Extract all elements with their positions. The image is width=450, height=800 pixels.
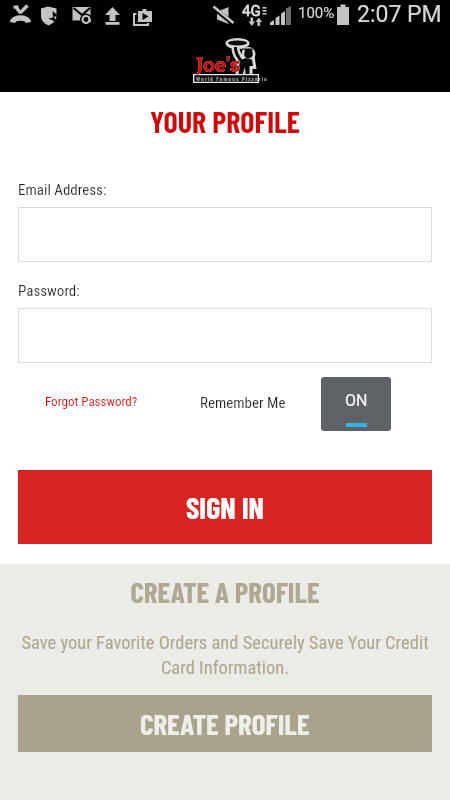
staticText: SIGN IN bbox=[186, 489, 264, 525]
staticText: CREATE A PROFILE bbox=[0, 574, 450, 609]
staticText: Forgot Password? bbox=[45, 394, 138, 409]
staticText: Joe's bbox=[196, 53, 241, 77]
staticText: 2:07 PM bbox=[357, 1, 442, 28]
staticText: 4G bbox=[242, 2, 261, 20]
staticText: Password: bbox=[18, 282, 80, 300]
staticText: ON bbox=[345, 391, 368, 410]
button[interactable]: Text input bbox=[18, 207, 432, 262]
staticText: 100% bbox=[298, 4, 335, 22]
button[interactable]: Forgot Password? bbox=[37, 386, 146, 417]
staticText: Remember Me bbox=[200, 394, 286, 412]
staticText: Joe's bbox=[196, 53, 241, 77]
staticText: Save your Favorite Orders and Securely S… bbox=[18, 632, 432, 678]
button[interactable]: Text input bbox=[18, 308, 432, 363]
staticText: YOUR PROFILE bbox=[0, 103, 450, 139]
staticText: CREATE PROFILE bbox=[140, 706, 310, 741]
staticText: World Famous Pizzeria bbox=[196, 75, 268, 82]
staticText: Email Address: bbox=[18, 181, 107, 199]
button[interactable]: CREATE PROFILE bbox=[18, 695, 432, 752]
button[interactable]: SIGN IN bbox=[18, 470, 432, 544]
button[interactable]: Remember Me toggle on bbox=[321, 377, 391, 431]
